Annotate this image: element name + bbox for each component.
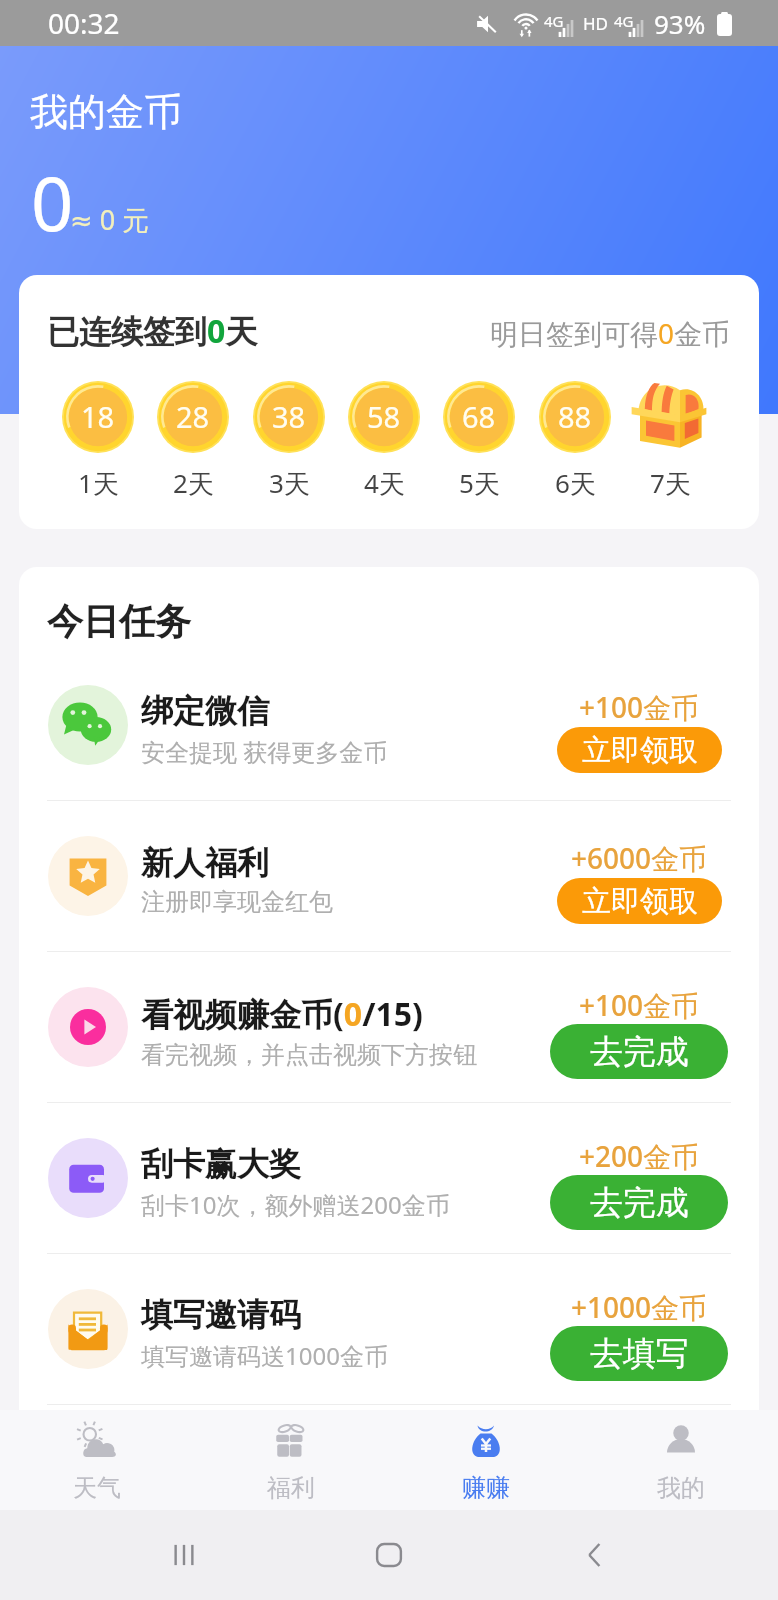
button[interactable]: 天气	[0, 1410, 194, 1510]
other: Back	[573, 1533, 617, 1577]
staticText: 填写邀请码送1000金币	[141, 1339, 388, 1372]
other: Home	[367, 1533, 411, 1577]
staticText: 00:32	[48, 4, 120, 42]
staticText: 0	[31, 152, 74, 253]
staticText: 去完成	[590, 1182, 689, 1224]
button[interactable]: 新人福利	[19, 801, 759, 951]
staticText: 明日签到可得0金币	[490, 314, 731, 352]
staticText: 今日任务	[47, 599, 191, 644]
staticText: HD	[583, 12, 609, 35]
button[interactable]: 看视频赚金币(0/15)	[19, 952, 759, 1102]
staticText: 58	[367, 397, 401, 436]
button[interactable]: 去完成	[550, 1175, 728, 1230]
staticText: 刮卡10次，额外赠送200金币	[141, 1188, 450, 1221]
staticText: 28	[176, 397, 210, 436]
staticText: 1天	[78, 465, 119, 501]
staticText: +200金币	[579, 1137, 700, 1175]
staticText: 4G	[544, 11, 564, 31]
staticText: 刮卡赢大奖	[141, 1144, 301, 1184]
staticText: 看完视频，并点击视频下方按钮	[141, 1040, 477, 1070]
staticText: 38	[272, 397, 306, 436]
staticText: +6000金币	[571, 839, 708, 877]
staticText: 93%	[654, 6, 706, 41]
staticText: +1000金币	[571, 1288, 708, 1326]
staticText: 新人福利	[141, 843, 269, 883]
staticText: 68	[462, 397, 496, 436]
staticText: 注册即享现金红包	[141, 887, 333, 917]
button[interactable]: 去填写	[550, 1326, 728, 1381]
staticText: 福利	[267, 1473, 315, 1503]
staticText: 去填写	[590, 1333, 689, 1375]
staticText: ≈ 0 元	[70, 201, 150, 238]
staticText: +100金币	[579, 688, 700, 726]
staticText: 已连续签到0天	[47, 309, 258, 353]
staticText: 4天	[364, 465, 405, 501]
staticText: 2天	[173, 465, 214, 501]
button[interactable]: 赚赚	[388, 1410, 583, 1510]
button[interactable]: 刮卡赢大奖	[19, 1103, 759, 1253]
staticText: +100金币	[579, 986, 700, 1024]
staticText: 4G	[614, 11, 634, 31]
button[interactable]: 立即领取	[557, 878, 722, 924]
button[interactable]: 绑定微信	[19, 650, 759, 800]
button[interactable]: 立即领取	[557, 727, 722, 773]
staticText: 赚赚	[462, 1473, 510, 1503]
button[interactable]: 填写邀请码	[19, 1254, 759, 1404]
staticText: 去完成	[590, 1031, 689, 1073]
button[interactable]: 我的	[583, 1410, 778, 1510]
staticText: 安全提现 获得更多金币	[141, 735, 388, 768]
staticText: 3天	[269, 465, 310, 501]
staticText: 88	[558, 397, 592, 436]
staticText: 7天	[650, 465, 691, 501]
staticText: 我的金币	[30, 88, 182, 136]
staticText: 5天	[459, 465, 500, 501]
other: Recent apps	[162, 1533, 206, 1577]
staticText: 绑定微信	[141, 691, 269, 731]
staticText: 6天	[555, 465, 596, 501]
staticText: 立即领取	[582, 732, 698, 769]
staticText: 填写邀请码	[141, 1295, 301, 1335]
button[interactable]: 福利	[194, 1410, 388, 1510]
staticText: 立即领取	[582, 883, 698, 920]
staticText: 我的	[657, 1473, 705, 1503]
staticText: 天气	[73, 1473, 121, 1503]
staticText: 看视频赚金币(0/15)	[141, 992, 423, 1036]
staticText: 18	[81, 397, 115, 436]
button[interactable]: 去完成	[550, 1024, 728, 1079]
